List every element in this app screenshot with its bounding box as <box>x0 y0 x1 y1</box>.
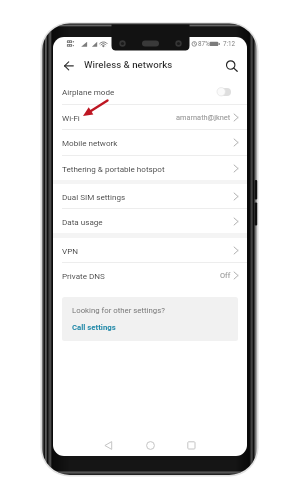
button[interactable]: Data usage <box>53 209 247 233</box>
button[interactable]: Mobile network <box>53 130 247 156</box>
button[interactable]: Private DNS <box>53 263 247 288</box>
button[interactable]: Wi-Fi <box>53 105 247 130</box>
button[interactable]: Looking for other settings? <box>62 297 238 341</box>
button[interactable]: Recents <box>180 434 202 456</box>
staticText: 87% <box>198 40 210 47</box>
button[interactable]: Tethering & portable hotspot <box>53 156 247 180</box>
button[interactable]: Home <box>139 434 161 456</box>
button[interactable]: Dual SIM settings <box>53 184 247 209</box>
staticText: VPN <box>62 246 79 255</box>
button[interactable]: VPN <box>53 238 247 263</box>
staticText: Dual SIM settings <box>62 192 126 201</box>
staticText: 7:12 <box>223 40 236 47</box>
staticText: Tethering & portable hotspot <box>62 164 165 173</box>
staticText: Airplane mode <box>62 87 115 96</box>
staticText: Call settings <box>72 323 116 332</box>
staticText: amarnath@jknet <box>176 113 231 122</box>
button[interactable]: Airplane mode <box>53 79 247 105</box>
staticText: Wi-Fi <box>62 113 80 122</box>
staticText: Data usage <box>62 217 103 226</box>
staticText: Mobile network <box>62 138 118 147</box>
staticText: Looking for other settings? <box>72 306 165 315</box>
staticText: Off <box>220 271 231 280</box>
button[interactable]: Search <box>224 54 240 77</box>
button[interactable]: Back <box>62 54 77 77</box>
button[interactable]: Back <box>97 434 119 456</box>
staticText: Private DNS <box>62 271 105 280</box>
staticText: Wireless & networks <box>84 59 173 70</box>
